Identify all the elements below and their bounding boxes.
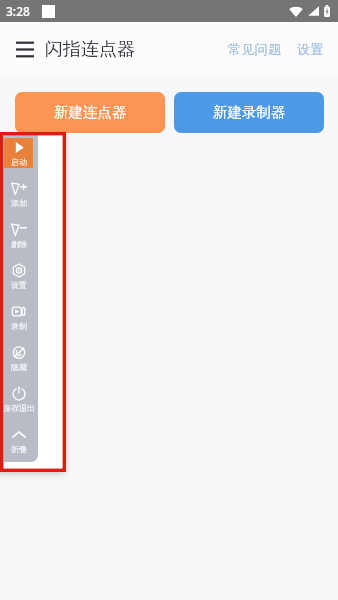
staticText: 删除 [11,239,27,249]
staticText: 闪指连点器 [45,38,135,61]
button[interactable]: 删除 [4,214,38,255]
button[interactable]: Menu [10,34,40,64]
staticText: 录制 [11,321,27,331]
button[interactable]: 隐藏 [4,337,38,378]
button[interactable]: 设置 [293,33,328,66]
button[interactable]: 保存退出 [4,378,38,419]
staticText: 启动 [11,157,27,167]
staticText: 设置 [11,280,27,290]
staticText: 保存退出 [4,403,35,413]
button[interactable]: 新建录制器 [174,92,324,133]
button[interactable]: 添加 [4,173,38,214]
staticText: 新建录制器 [213,103,286,121]
staticText: 隐藏 [11,362,27,372]
button[interactable]: 设置 [4,255,38,296]
staticText: 折叠 [11,444,27,454]
button[interactable]: 录制 [4,296,38,337]
staticText: 新建连点器 [54,103,127,121]
button[interactable]: 常见问题 [224,33,286,66]
staticText: 设置 [297,41,324,58]
button[interactable]: 新建连点器 [15,92,165,133]
button[interactable]: 启动 [4,132,38,173]
staticText: 添加 [11,198,27,208]
staticText: 3:28 [6,3,30,19]
button[interactable]: 折叠 [4,419,38,460]
staticText: 常见问题 [228,41,282,58]
